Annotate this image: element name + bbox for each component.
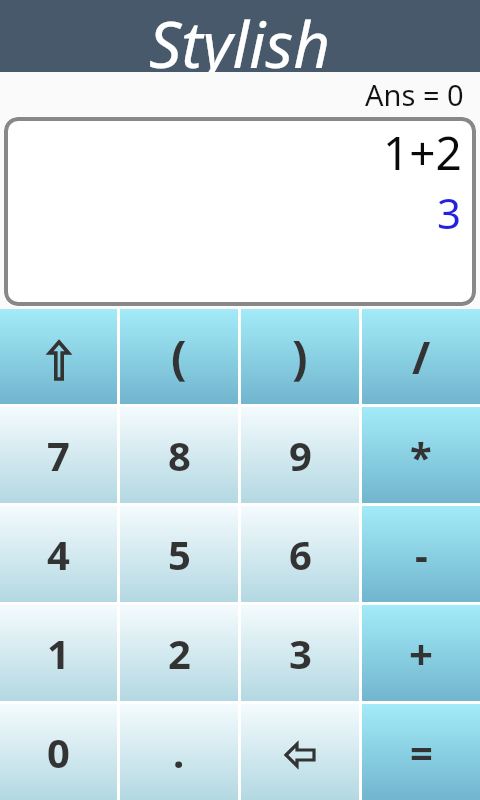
button[interactable]: = xyxy=(362,704,480,800)
staticText: 5 xyxy=(168,527,191,581)
button[interactable]: . xyxy=(120,704,238,800)
staticText: Stylish xyxy=(149,0,331,72)
button[interactable]: 0 xyxy=(0,704,117,800)
staticText: 7 xyxy=(47,428,70,482)
staticText: 1+2 xyxy=(383,121,462,184)
staticText: + xyxy=(409,625,434,682)
staticText: 2 xyxy=(168,626,191,680)
staticText: ) xyxy=(292,325,308,388)
button[interactable] xyxy=(241,704,359,800)
button[interactable]: 1 xyxy=(0,605,117,701)
button[interactable]: 9 xyxy=(241,407,359,503)
button[interactable] xyxy=(0,309,117,404)
staticText: 3 xyxy=(289,626,312,680)
button[interactable]: 2 xyxy=(120,605,238,701)
button[interactable]: 6 xyxy=(241,506,359,602)
button[interactable]: / xyxy=(362,309,480,404)
staticText: 8 xyxy=(168,428,191,482)
button[interactable]: 7 xyxy=(0,407,117,503)
staticText: * xyxy=(410,429,432,483)
staticText: - xyxy=(415,527,428,581)
button[interactable]: ) xyxy=(241,309,359,404)
staticText: 0 xyxy=(47,725,70,779)
button[interactable]: * xyxy=(362,407,480,503)
staticText: 1 xyxy=(47,626,70,680)
button[interactable]: 4 xyxy=(0,506,117,602)
staticText: ( xyxy=(171,325,187,388)
button[interactable]: ( xyxy=(120,309,238,404)
button[interactable]: 8 xyxy=(120,407,238,503)
button[interactable]: - xyxy=(362,506,480,602)
staticText: = xyxy=(410,725,433,779)
staticText: / xyxy=(412,327,431,387)
staticText: . xyxy=(173,725,185,779)
button[interactable]: + xyxy=(362,605,480,701)
staticText: Ans = 0 xyxy=(365,75,464,114)
staticText: 6 xyxy=(289,527,312,581)
staticText: 4 xyxy=(47,527,70,581)
button[interactable]: 3 xyxy=(241,605,359,701)
button[interactable]: 5 xyxy=(120,506,238,602)
staticText: 9 xyxy=(289,428,312,482)
staticText: 3 xyxy=(437,184,462,241)
